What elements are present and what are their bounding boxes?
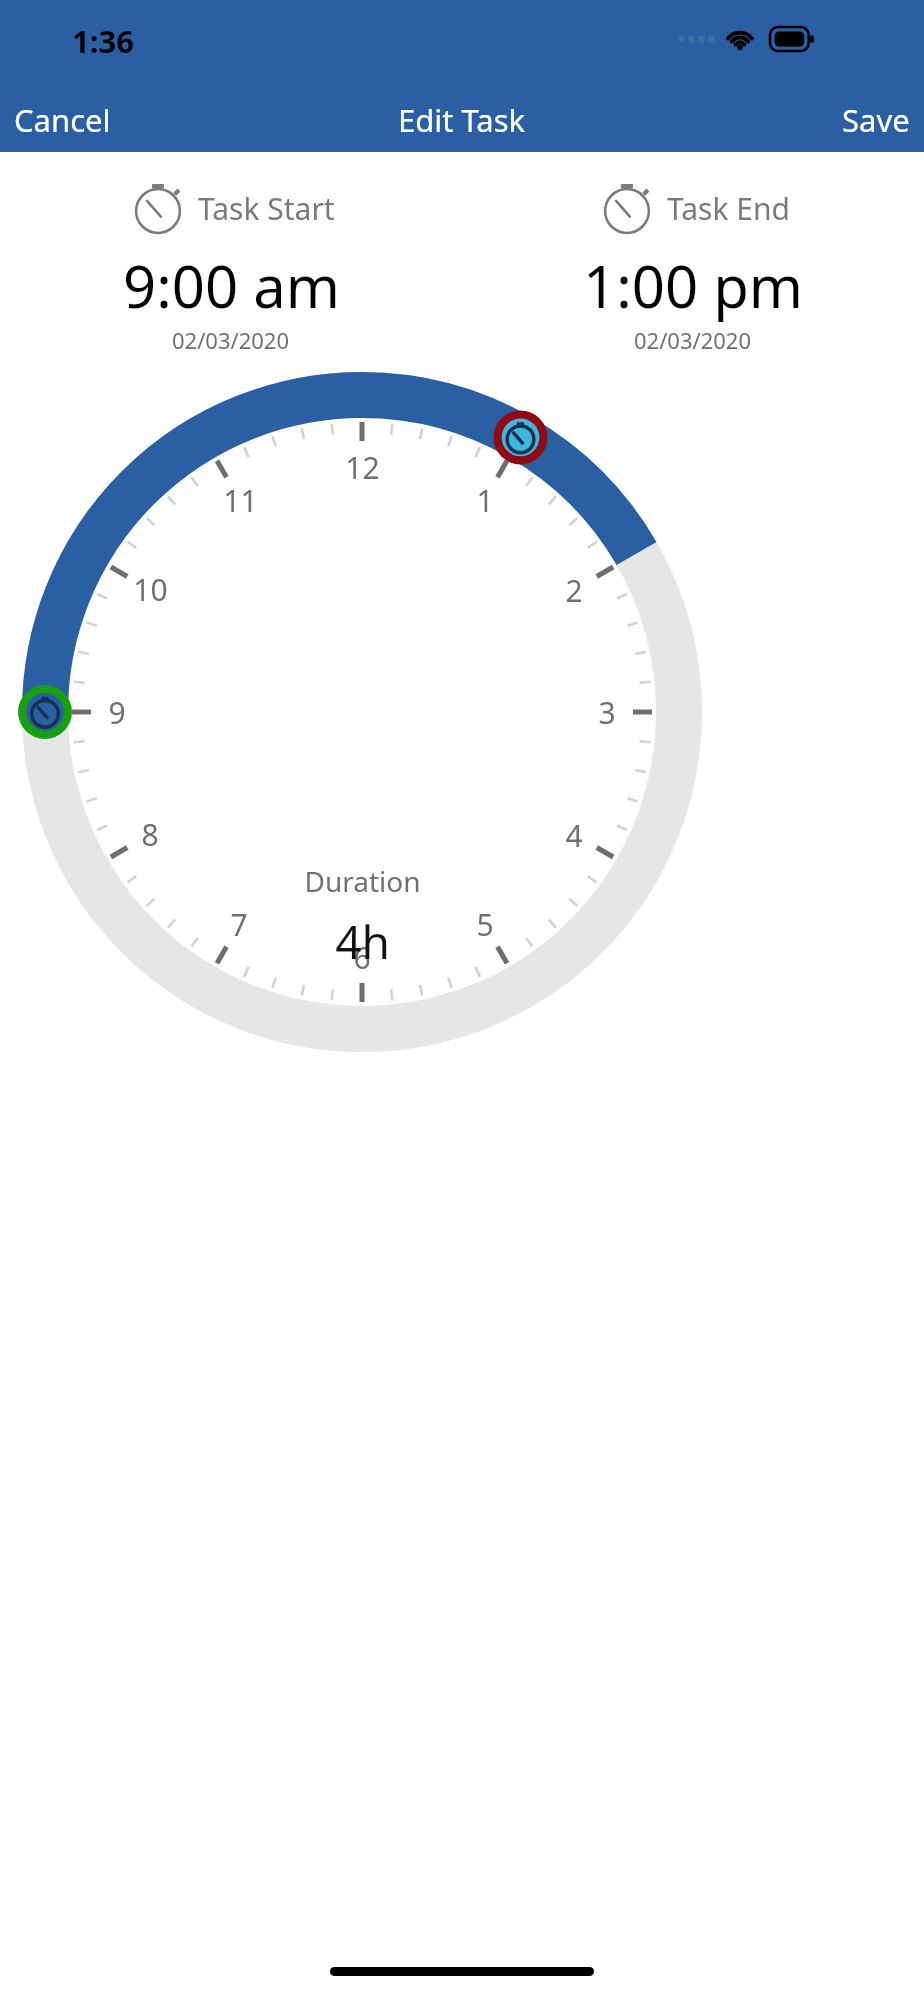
button[interactable]: Task Start [0,178,462,355]
staticText: Cancel [14,99,111,141]
staticText: 10 [133,569,168,610]
staticText: 9:00 am [123,246,340,325]
staticText: 8 [141,814,159,855]
staticText: 1:36 [72,20,134,62]
staticText: 3 [598,692,616,733]
staticText: 02/03/2020 [634,325,752,355]
staticText: 11 [223,480,258,521]
button[interactable]: Task End [462,178,924,355]
staticText: 2 [565,570,583,611]
staticText: 5 [476,904,494,945]
button[interactable]: Save [828,89,924,151]
staticText: 02/03/2020 [172,325,290,355]
staticText: Save [842,99,910,141]
staticText: 12 [345,447,380,488]
staticText: 1 [476,480,494,521]
staticText: 4h [335,910,390,973]
button[interactable]: Cancel [0,89,125,151]
button[interactable]: Duration dial, 9:00 am to 1:00 pm [0,0,924,2000]
staticText: 4 [565,815,583,856]
staticText: 7 [230,904,248,945]
staticText: Duration [304,862,421,900]
staticText: Task End [667,188,790,229]
staticText: 9 [108,692,126,733]
staticText: Edit Task [398,99,526,141]
staticText: 6 [353,937,371,978]
staticText: Task Start [198,188,335,229]
staticText: 1:00 pm [583,246,804,325]
